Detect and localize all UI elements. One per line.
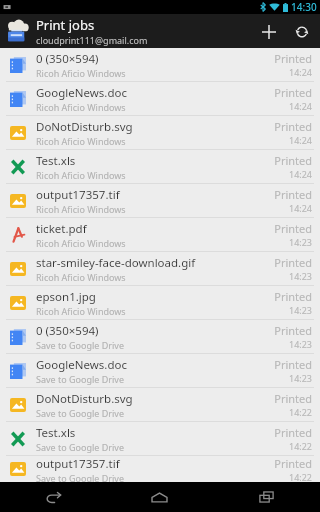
staticText: 14:24 [288, 134, 312, 146]
button[interactable]: GoogleNews.doc [0, 354, 320, 387]
staticText: Ricoh Aficio Windows [36, 67, 126, 79]
button[interactable]: output17357.tif [0, 456, 320, 482]
staticText: Printed [274, 119, 312, 134]
button[interactable]: Back [0, 482, 106, 512]
staticText: star-smiley-face-download.gif [36, 255, 196, 271]
staticText: cloudprint111@gmail.com [36, 34, 148, 46]
staticText: Ricoh Aficio Windows [36, 271, 126, 283]
staticText: GoogleNews.doc [36, 357, 127, 373]
staticText: 14:24 [288, 100, 312, 112]
staticText: DoNotDisturb.svg [36, 119, 133, 135]
button[interactable]: GoogleNews.doc [0, 82, 320, 115]
staticText: Test.xls [36, 425, 76, 441]
button[interactable]: Refresh [285, 15, 318, 48]
staticText: 14:23 [288, 372, 312, 384]
button[interactable]: DoNotDisturb.svg [0, 116, 320, 149]
staticText: output17357.tif [36, 187, 120, 203]
button[interactable]: 0 (350×594) [0, 320, 320, 353]
staticText: Printed [274, 289, 312, 304]
staticText: Save to Google Drive [36, 373, 124, 385]
staticText: Printed [274, 323, 312, 338]
button[interactable]: star-smiley-face-download.gif [0, 252, 320, 285]
button[interactable]: Recent apps [213, 482, 320, 512]
staticText: epson1.jpg [36, 289, 96, 305]
staticText: Printed [274, 221, 312, 236]
staticText: 0 (350×594) [36, 51, 99, 67]
staticText: 14:23 [288, 236, 312, 248]
staticText: Ricoh Aficio Windows [36, 135, 126, 147]
staticText: Printed [274, 391, 312, 406]
staticText: Save to Google Drive [36, 472, 124, 482]
button[interactable]: DoNotDisturb.svg [0, 388, 320, 421]
button[interactable]: Test.xls [0, 150, 320, 183]
staticText: GoogleNews.doc [36, 85, 127, 101]
staticText: Printed [274, 357, 312, 372]
staticText: Save to Google Drive [36, 441, 124, 453]
staticText: 14:23 [288, 270, 312, 282]
staticText: 14:22 [288, 440, 312, 452]
staticText: 14:22 [288, 471, 312, 482]
staticText: Test.xls [36, 153, 76, 169]
button[interactable]: 0 (350×594) [0, 48, 320, 81]
staticText: Ricoh Aficio Windows [36, 203, 126, 215]
staticText: 14:24 [288, 168, 312, 180]
staticText: 14:22 [288, 406, 312, 418]
button[interactable]: output17357.tif [0, 184, 320, 217]
staticText: Save to Google Drive [36, 407, 124, 419]
button[interactable]: Home [106, 482, 213, 512]
staticText: 14:24 [288, 66, 312, 78]
staticText: Save to Google Drive [36, 339, 124, 351]
staticText: Printed [274, 85, 312, 100]
button[interactable]: Test.xls [0, 422, 320, 455]
staticText: 14:24 [288, 202, 312, 214]
staticText: Printed [274, 187, 312, 202]
staticText: 14:23 [288, 304, 312, 316]
staticText: Ricoh Aficio Windows [36, 169, 126, 181]
staticText: Printed [274, 51, 312, 66]
button[interactable]: ticket.pdf [0, 218, 320, 251]
staticText: Printed [274, 153, 312, 168]
staticText: output17357.tif [36, 456, 120, 472]
staticText: Ricoh Aficio Windows [36, 305, 126, 317]
staticText: DoNotDisturb.svg [36, 391, 133, 407]
staticText: Ricoh Aficio Windows [36, 237, 126, 249]
button[interactable]: Add print job [252, 15, 285, 48]
button[interactable]: epson1.jpg [0, 286, 320, 319]
staticText: Ricoh Aficio Windows [36, 101, 126, 113]
staticText: Printed [274, 255, 312, 270]
staticText: 14:30 [291, 0, 317, 14]
staticText: 14:23 [288, 338, 312, 350]
staticText: ticket.pdf [36, 221, 87, 237]
staticText: 0 (350×594) [36, 323, 99, 339]
staticText: Print jobs [36, 16, 95, 34]
staticText: Printed [274, 425, 312, 440]
staticText: Printed [274, 456, 312, 471]
